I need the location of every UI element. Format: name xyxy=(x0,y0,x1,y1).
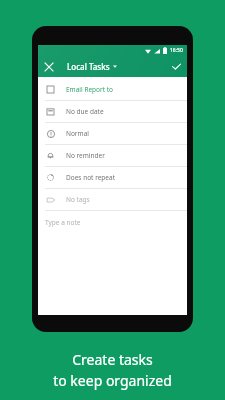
button[interactable]: Due date xyxy=(38,101,187,122)
other: Priority xyxy=(45,128,56,139)
other: Task title xyxy=(45,84,56,95)
staticText: Does not repeat xyxy=(66,173,116,182)
staticText: Normal xyxy=(66,129,89,138)
staticText: Type a note xyxy=(45,218,81,227)
button[interactable]: Reminder xyxy=(38,145,187,166)
staticText: to keep organized xyxy=(53,371,172,390)
staticText: 16:50 xyxy=(170,47,183,54)
other: Due date xyxy=(45,106,56,117)
other: Repeat xyxy=(45,172,56,183)
button[interactable]: Task title xyxy=(38,79,187,100)
button[interactable]: Repeat xyxy=(38,167,187,188)
staticText: Email Report to xyxy=(66,85,114,94)
other: Tags xyxy=(45,194,56,205)
button[interactable]: Save xyxy=(166,56,187,77)
other: Reminder xyxy=(45,150,56,161)
staticText: No due date xyxy=(66,107,104,116)
button[interactable]: Close xyxy=(38,56,59,77)
staticText: No reminder xyxy=(66,151,105,160)
staticText: Create tasks xyxy=(72,350,153,369)
staticText: Local Tasks xyxy=(67,61,110,72)
button[interactable]: Type a note xyxy=(38,211,187,241)
button[interactable]: Priority xyxy=(38,123,187,144)
button[interactable]: Tags xyxy=(38,189,187,210)
button[interactable]: Local Tasks xyxy=(65,58,119,75)
staticText: No tags xyxy=(66,195,90,204)
